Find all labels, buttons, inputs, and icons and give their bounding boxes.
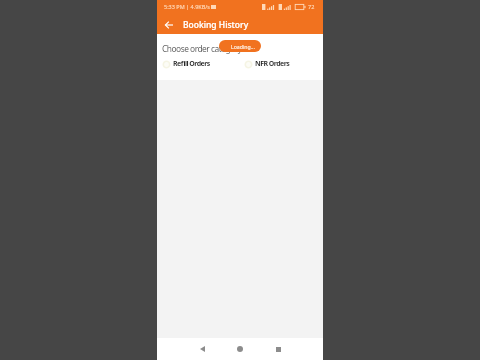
button[interactable]: Recent apps bbox=[270, 341, 286, 357]
button[interactable]: Loading... bbox=[219, 40, 261, 52]
button[interactable]: Back bbox=[194, 341, 210, 357]
staticText: Refill Orders bbox=[173, 59, 210, 69]
button[interactable]: Refill Orders bbox=[162, 59, 242, 69]
button[interactable]: Back bbox=[162, 18, 176, 32]
staticText: 72 bbox=[308, 3, 315, 10]
staticText: Choose order category bbox=[162, 43, 242, 54]
button[interactable]: Home bbox=[232, 341, 248, 357]
button[interactable]: NFR Orders bbox=[244, 59, 290, 69]
staticText: Booking History bbox=[183, 19, 249, 31]
staticText: Loading... bbox=[231, 43, 255, 50]
staticText: 5:33 PM | 4.9KB/s bbox=[164, 3, 210, 10]
staticText: NFR Orders bbox=[255, 59, 290, 69]
